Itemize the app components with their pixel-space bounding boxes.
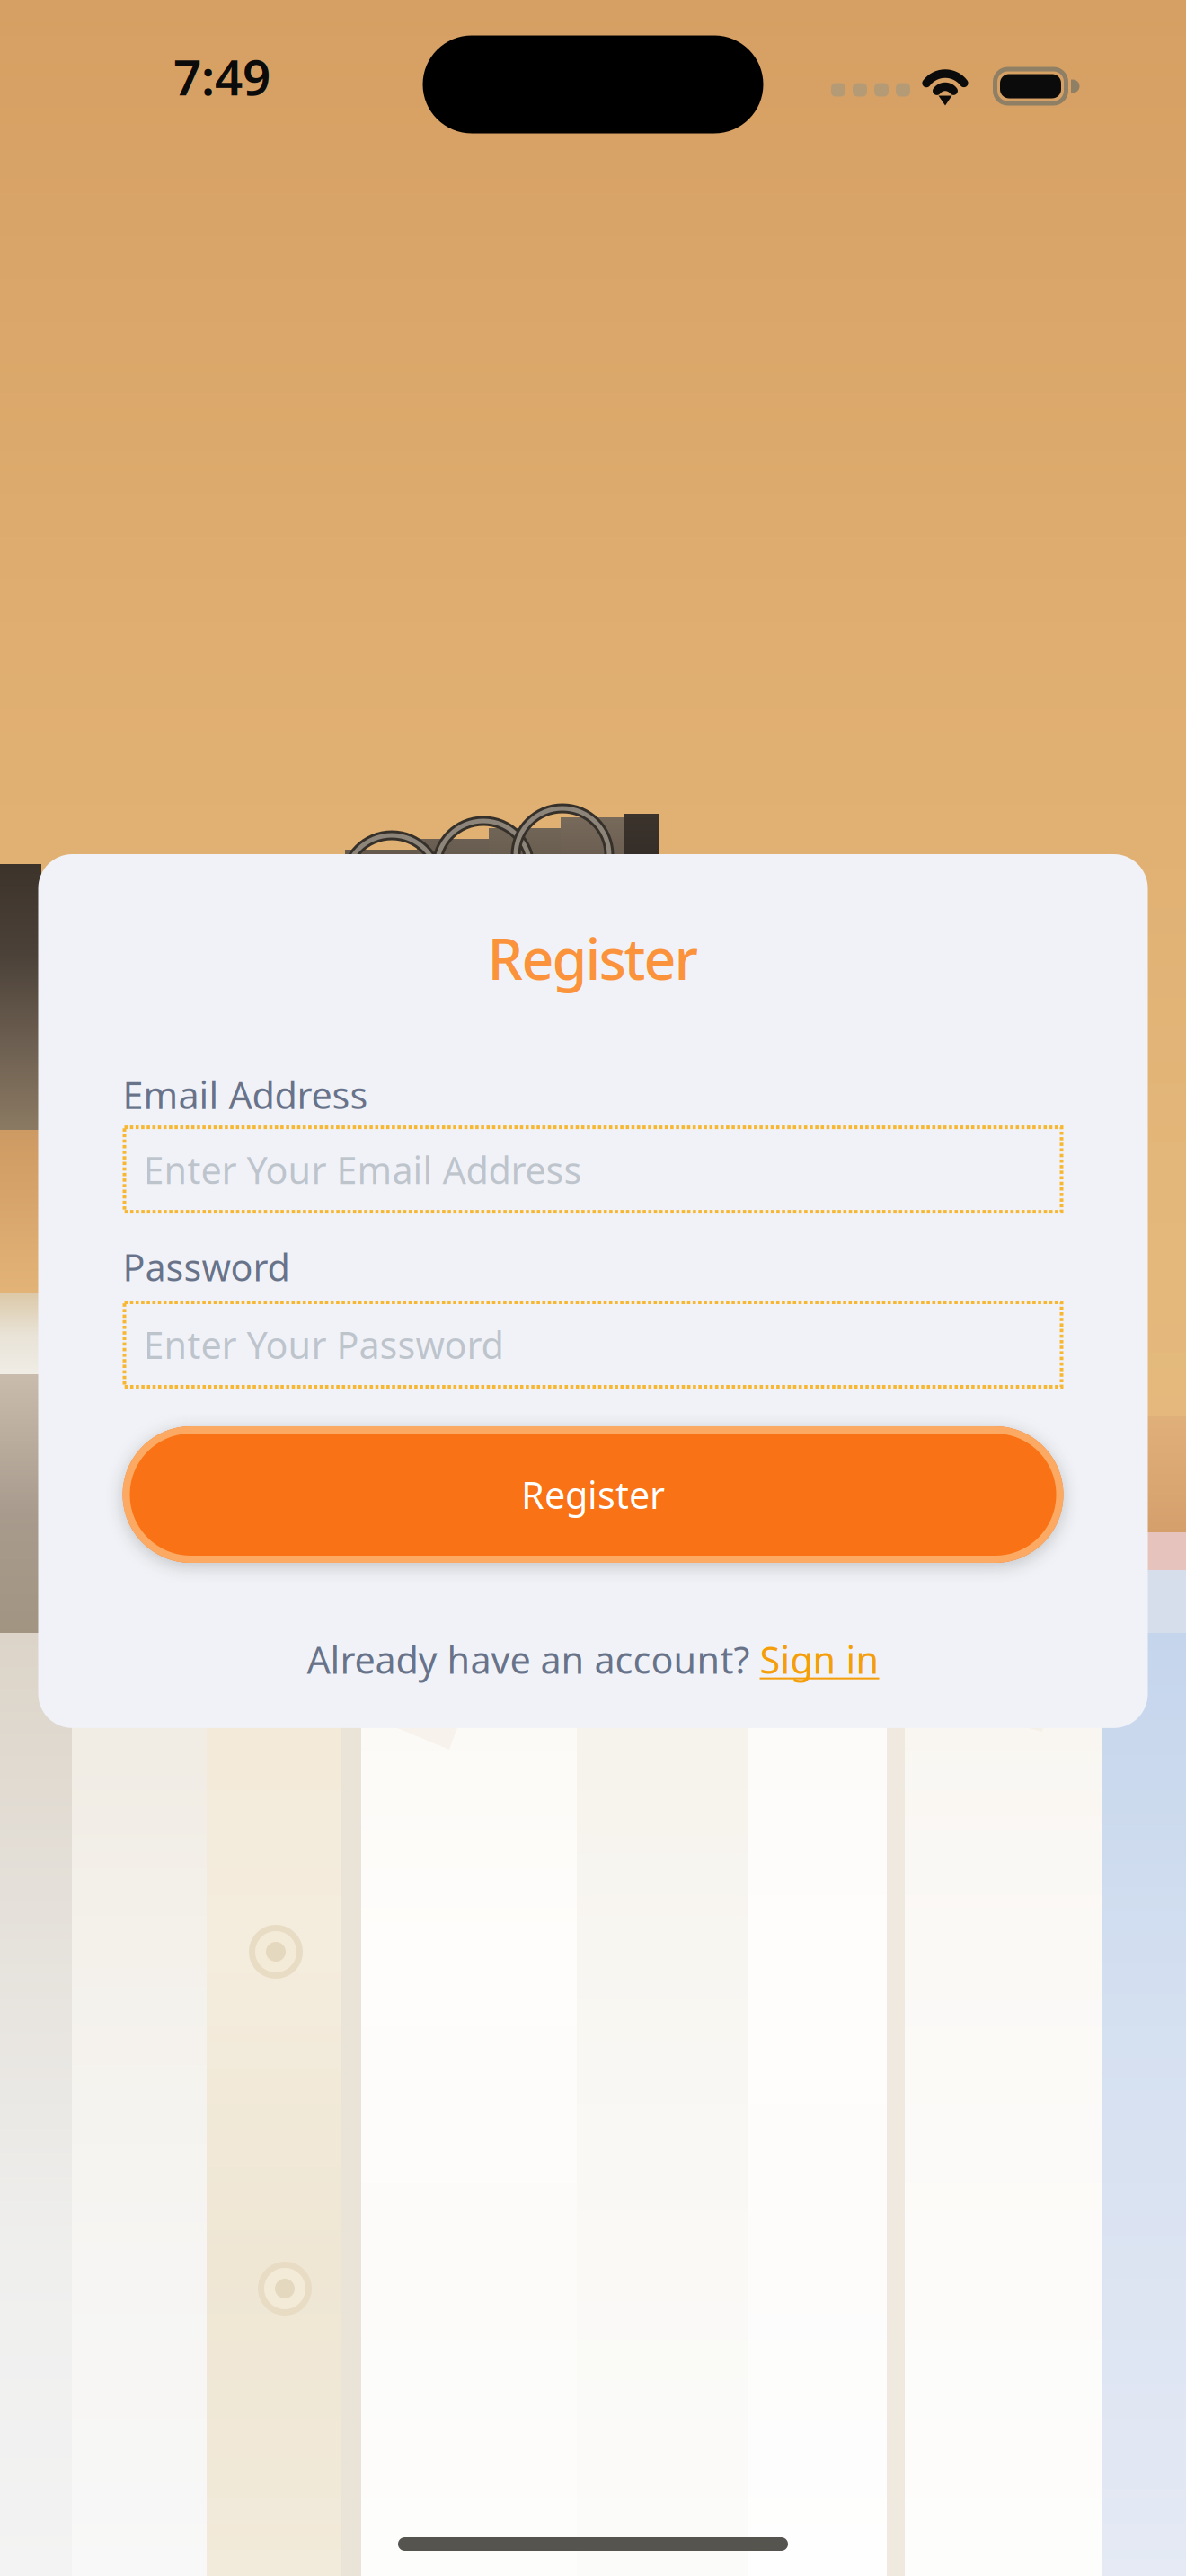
staticText: 7:49 xyxy=(173,44,270,109)
staticText: Register xyxy=(487,921,699,995)
staticText: Sign in xyxy=(760,1635,879,1684)
staticText: Enter Your Password xyxy=(143,1320,504,1369)
staticText: Email Address xyxy=(123,1070,368,1119)
staticText: Register xyxy=(521,1470,665,1519)
button[interactable]: Sign in xyxy=(760,1635,879,1684)
staticText: Password xyxy=(123,1242,290,1292)
button[interactable]: Register xyxy=(123,1426,1063,1563)
staticText: Enter Your Email Address xyxy=(143,1145,582,1194)
staticText: Already have an account? xyxy=(307,1635,760,1684)
